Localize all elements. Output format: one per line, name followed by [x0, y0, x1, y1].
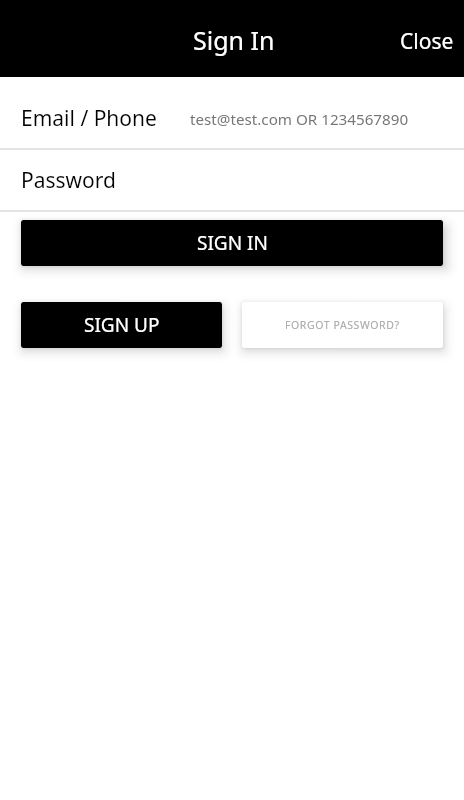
button[interactable]: Email / Phone [0, 77, 464, 148]
button[interactable]: Close [386, 0, 464, 70]
button[interactable]: SIGN UP [21, 302, 222, 348]
button[interactable]: FORGOT PASSWORD? [242, 302, 443, 348]
button[interactable]: SIGN IN [21, 220, 443, 266]
staticText: Email / Phone [21, 104, 157, 133]
staticText: FORGOT PASSWORD? [285, 318, 400, 332]
staticText: Password [21, 166, 116, 195]
staticText: SIGN UP [84, 312, 160, 338]
button[interactable]: Password [0, 150, 464, 210]
staticText: test@test.com OR 1234567890 [190, 109, 409, 130]
staticText: Sign In [193, 23, 275, 57]
staticText: SIGN IN [197, 230, 268, 256]
staticText: Close [400, 27, 454, 56]
